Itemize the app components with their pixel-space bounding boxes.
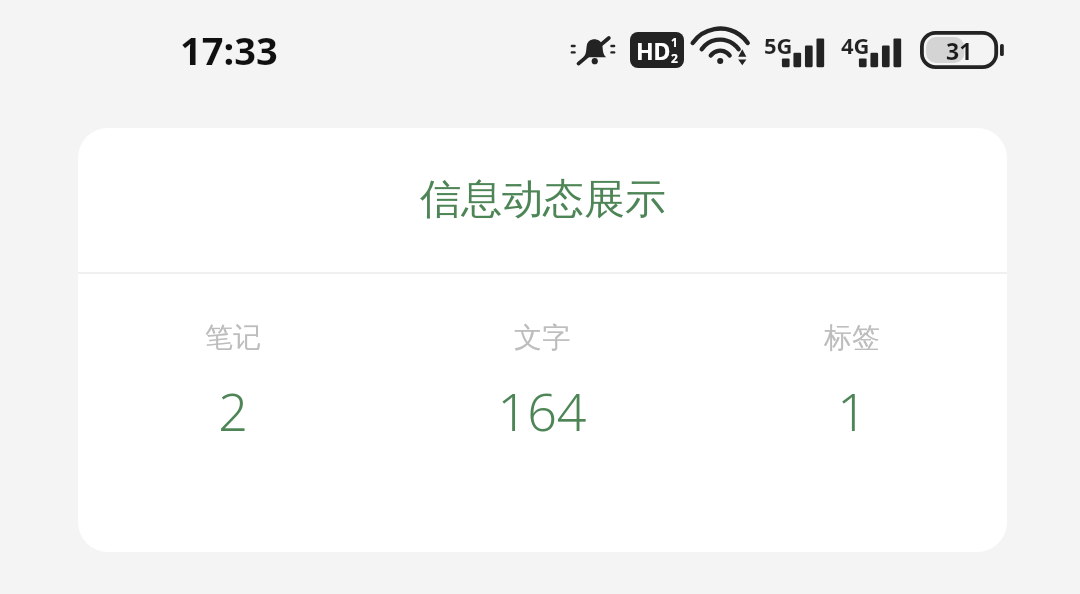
button[interactable]: 笔记	[78, 274, 387, 446]
staticText: 164	[497, 375, 587, 446]
other: Battery 31 percent	[920, 31, 1004, 69]
staticText: 标签	[824, 320, 880, 355]
staticText: 4G	[841, 30, 870, 60]
staticText: 1	[837, 375, 867, 446]
staticText: 1	[671, 34, 678, 50]
staticText: 2	[671, 50, 678, 66]
staticText: 5G	[764, 30, 793, 60]
button[interactable]: 文字	[387, 274, 697, 446]
staticText: 17:33	[180, 24, 278, 76]
staticText: 文字	[514, 320, 570, 355]
staticText: 信息动态展示	[420, 174, 666, 226]
button[interactable]: 标签	[697, 274, 1007, 446]
other: Silent mode	[571, 30, 615, 70]
other: 4G signal	[841, 30, 905, 70]
other: 5G signal	[764, 30, 828, 70]
button[interactable]: 信息动态展示	[78, 128, 1007, 552]
staticText: 31	[946, 35, 973, 66]
staticText: 2	[218, 375, 248, 446]
staticText: HD	[636, 35, 671, 66]
other: Wi-Fi	[701, 31, 749, 69]
other: HD voice	[630, 32, 684, 68]
staticText: 笔记	[205, 320, 261, 355]
